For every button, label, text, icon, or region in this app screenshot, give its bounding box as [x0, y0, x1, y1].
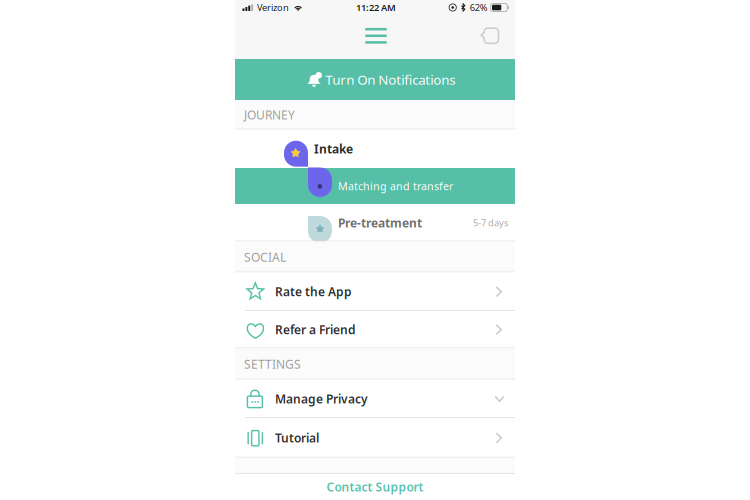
- staticText: SETTINGS: [244, 356, 301, 372]
- staticText: SOCIAL: [244, 249, 286, 265]
- staticText: Tutorial: [275, 430, 319, 446]
- button[interactable]: Turn On Notifications: [235, 59, 515, 100]
- staticText: 5-7 days: [473, 217, 508, 229]
- staticText: Manage Privacy: [275, 391, 368, 407]
- staticText: Matching and transfer: [338, 179, 453, 193]
- staticText: Rate the App: [275, 284, 352, 300]
- button[interactable]: Contact Support: [235, 474, 515, 500]
- staticText: 11:22 AM: [356, 1, 396, 14]
- staticText: JOURNEY: [244, 107, 295, 123]
- button[interactable]: Tutorial: [235, 418, 515, 458]
- staticText: Contact Support: [326, 479, 423, 495]
- button[interactable]: Rate the App: [235, 272, 515, 311]
- button[interactable]: Refer a Friend: [235, 311, 515, 348]
- button[interactable]: Manage Privacy: [235, 380, 515, 418]
- staticText: Pre-treatment: [338, 215, 422, 231]
- button[interactable]: Menu: [353, 19, 397, 55]
- staticText: Turn On Notifications: [325, 71, 455, 88]
- staticText: Refer a Friend: [275, 322, 356, 338]
- staticText: Verizon: [257, 1, 289, 14]
- staticText: Intake: [314, 141, 353, 157]
- button[interactable]: Messages: [473, 19, 507, 55]
- staticText: 62%: [470, 1, 488, 14]
